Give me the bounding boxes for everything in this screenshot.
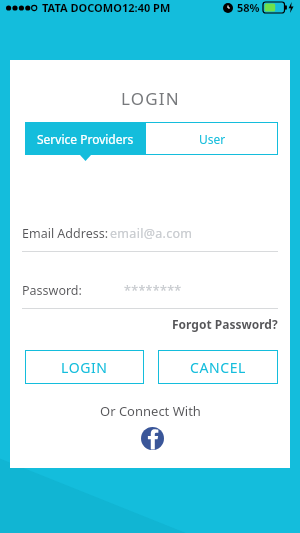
staticText: Or Connect With [100, 402, 201, 420]
button[interactable]: LOGIN [25, 350, 144, 384]
staticText: ******** [124, 282, 182, 299]
staticText: 58% [237, 0, 260, 15]
staticText: 12:40 PM [122, 0, 171, 15]
button[interactable]: Service Providers [25, 122, 146, 155]
staticText: Forgot Password? [172, 316, 278, 332]
staticText: Password: [22, 282, 82, 299]
button[interactable]: Sign in with Facebook [141, 427, 164, 450]
staticText: CANCEL [190, 358, 247, 377]
staticText: User [199, 131, 226, 147]
staticText: Service Providers [37, 131, 134, 147]
staticText: TATA DOCOMO [42, 0, 122, 15]
staticText: Email Address: [22, 225, 109, 242]
staticText: LOGIN [121, 87, 180, 110]
staticText: email@a.com [110, 225, 193, 242]
button[interactable]: Email Address: [22, 222, 278, 252]
button[interactable]: User [146, 122, 278, 155]
button[interactable]: Password: [22, 279, 278, 309]
button[interactable]: CANCEL [158, 350, 278, 384]
button[interactable]: Forgot Password? [160, 315, 278, 333]
staticText: LOGIN [61, 358, 108, 377]
